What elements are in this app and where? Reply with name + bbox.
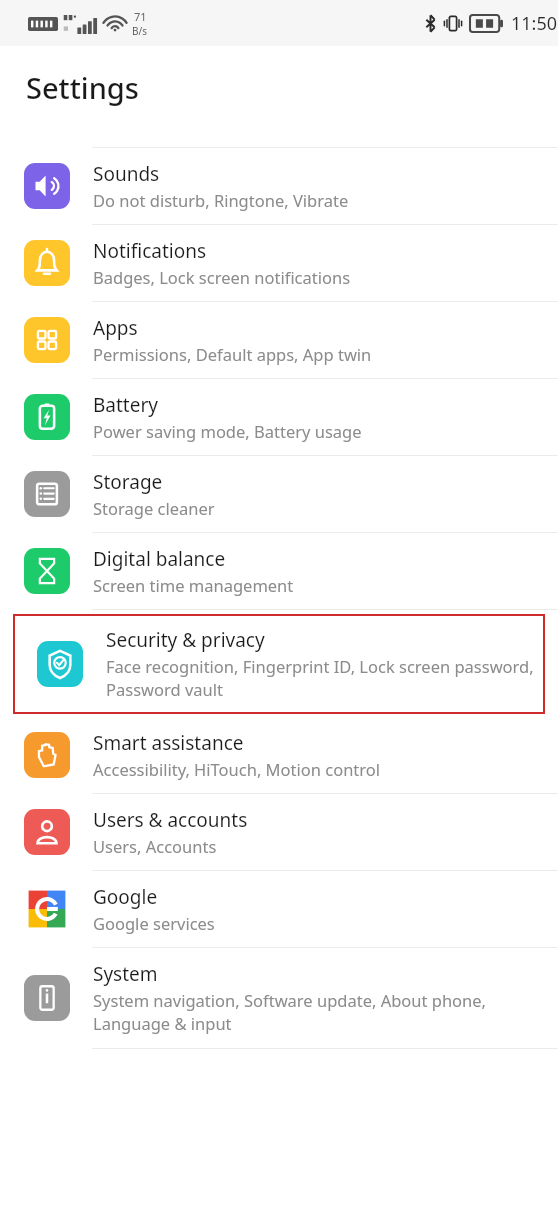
staticText: B/s: [132, 24, 148, 38]
staticText: 71: [134, 9, 147, 24]
other: Google: [24, 886, 70, 932]
staticText: System navigation, Software update, Abou…: [93, 989, 548, 1035]
staticText: Google: [93, 884, 158, 910]
button[interactable]: Battery: [0, 379, 558, 456]
staticText: Permissions, Default apps, App twin: [93, 343, 372, 365]
staticText: Screen time management: [93, 574, 294, 596]
staticText: Apps: [93, 315, 138, 341]
button[interactable]: Notifications: [0, 225, 558, 302]
button[interactable]: Smart assistance: [0, 717, 558, 794]
button[interactable]: Google: [0, 871, 558, 948]
staticText: Settings: [26, 68, 139, 107]
other: Users & accounts: [24, 809, 70, 855]
staticText: Digital balance: [93, 546, 226, 572]
staticText: Do not disturb, Ringtone, Vibrate: [93, 189, 349, 211]
staticText: Power saving mode, Battery usage: [93, 420, 362, 442]
button[interactable]: Digital balance: [0, 533, 558, 610]
other: System: [24, 975, 70, 1021]
staticText: Users, Accounts: [93, 835, 217, 857]
button[interactable]: Sounds: [0, 148, 558, 225]
staticText: Badges, Lock screen notifications: [93, 266, 351, 288]
other: Notifications: [24, 240, 70, 286]
staticText: Sounds: [93, 161, 160, 187]
staticText: Storage cleaner: [93, 497, 215, 519]
staticText: Users & accounts: [93, 807, 248, 833]
staticText: Battery: [93, 392, 158, 418]
button[interactable]: Apps: [0, 302, 558, 379]
staticText: System: [93, 961, 158, 987]
other: Security & privacy: [37, 641, 83, 687]
staticText: Google services: [93, 912, 215, 934]
other: Smart assistance: [24, 732, 70, 778]
other: Digital balance: [24, 548, 70, 594]
staticText: Notifications: [93, 238, 207, 264]
button[interactable]: Storage: [0, 456, 558, 533]
button[interactable]: Security & privacy: [13, 614, 545, 714]
other: Sounds: [24, 163, 70, 209]
staticText: 11:50: [511, 11, 558, 36]
staticText: Accessibility, HiTouch, Motion control: [93, 758, 381, 780]
button[interactable]: System: [0, 948, 558, 1049]
staticText: Storage: [93, 469, 163, 495]
other: Storage: [24, 471, 70, 517]
other: Apps: [24, 317, 70, 363]
staticText: Smart assistance: [93, 730, 244, 756]
button[interactable]: Users & accounts: [0, 794, 558, 871]
staticText: Face recognition, Fingerprint ID, Lock s…: [106, 655, 535, 701]
staticText: Security & privacy: [106, 627, 265, 653]
other: Battery: [24, 394, 70, 440]
